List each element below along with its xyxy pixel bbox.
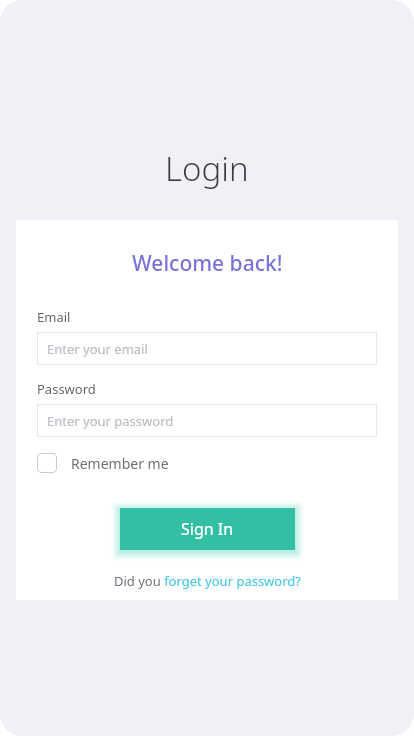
staticText: Remember me xyxy=(71,454,169,473)
staticText: Login xyxy=(165,146,249,191)
button[interactable]: Enter your email xyxy=(37,332,377,365)
staticText: Password xyxy=(37,380,96,398)
staticText: Did you forget your password? xyxy=(114,572,301,590)
staticText: Email xyxy=(37,308,71,326)
staticText: Enter your email xyxy=(47,340,148,358)
button[interactable]: Remember me xyxy=(37,449,169,477)
button[interactable]: Did you forget your password? xyxy=(108,568,307,594)
button[interactable]: Enter your password xyxy=(37,404,377,437)
staticText: Welcome back! xyxy=(132,249,283,278)
staticText: Sign In xyxy=(181,518,234,540)
button[interactable]: Sign In xyxy=(120,508,295,550)
staticText: Enter your password xyxy=(47,412,174,430)
